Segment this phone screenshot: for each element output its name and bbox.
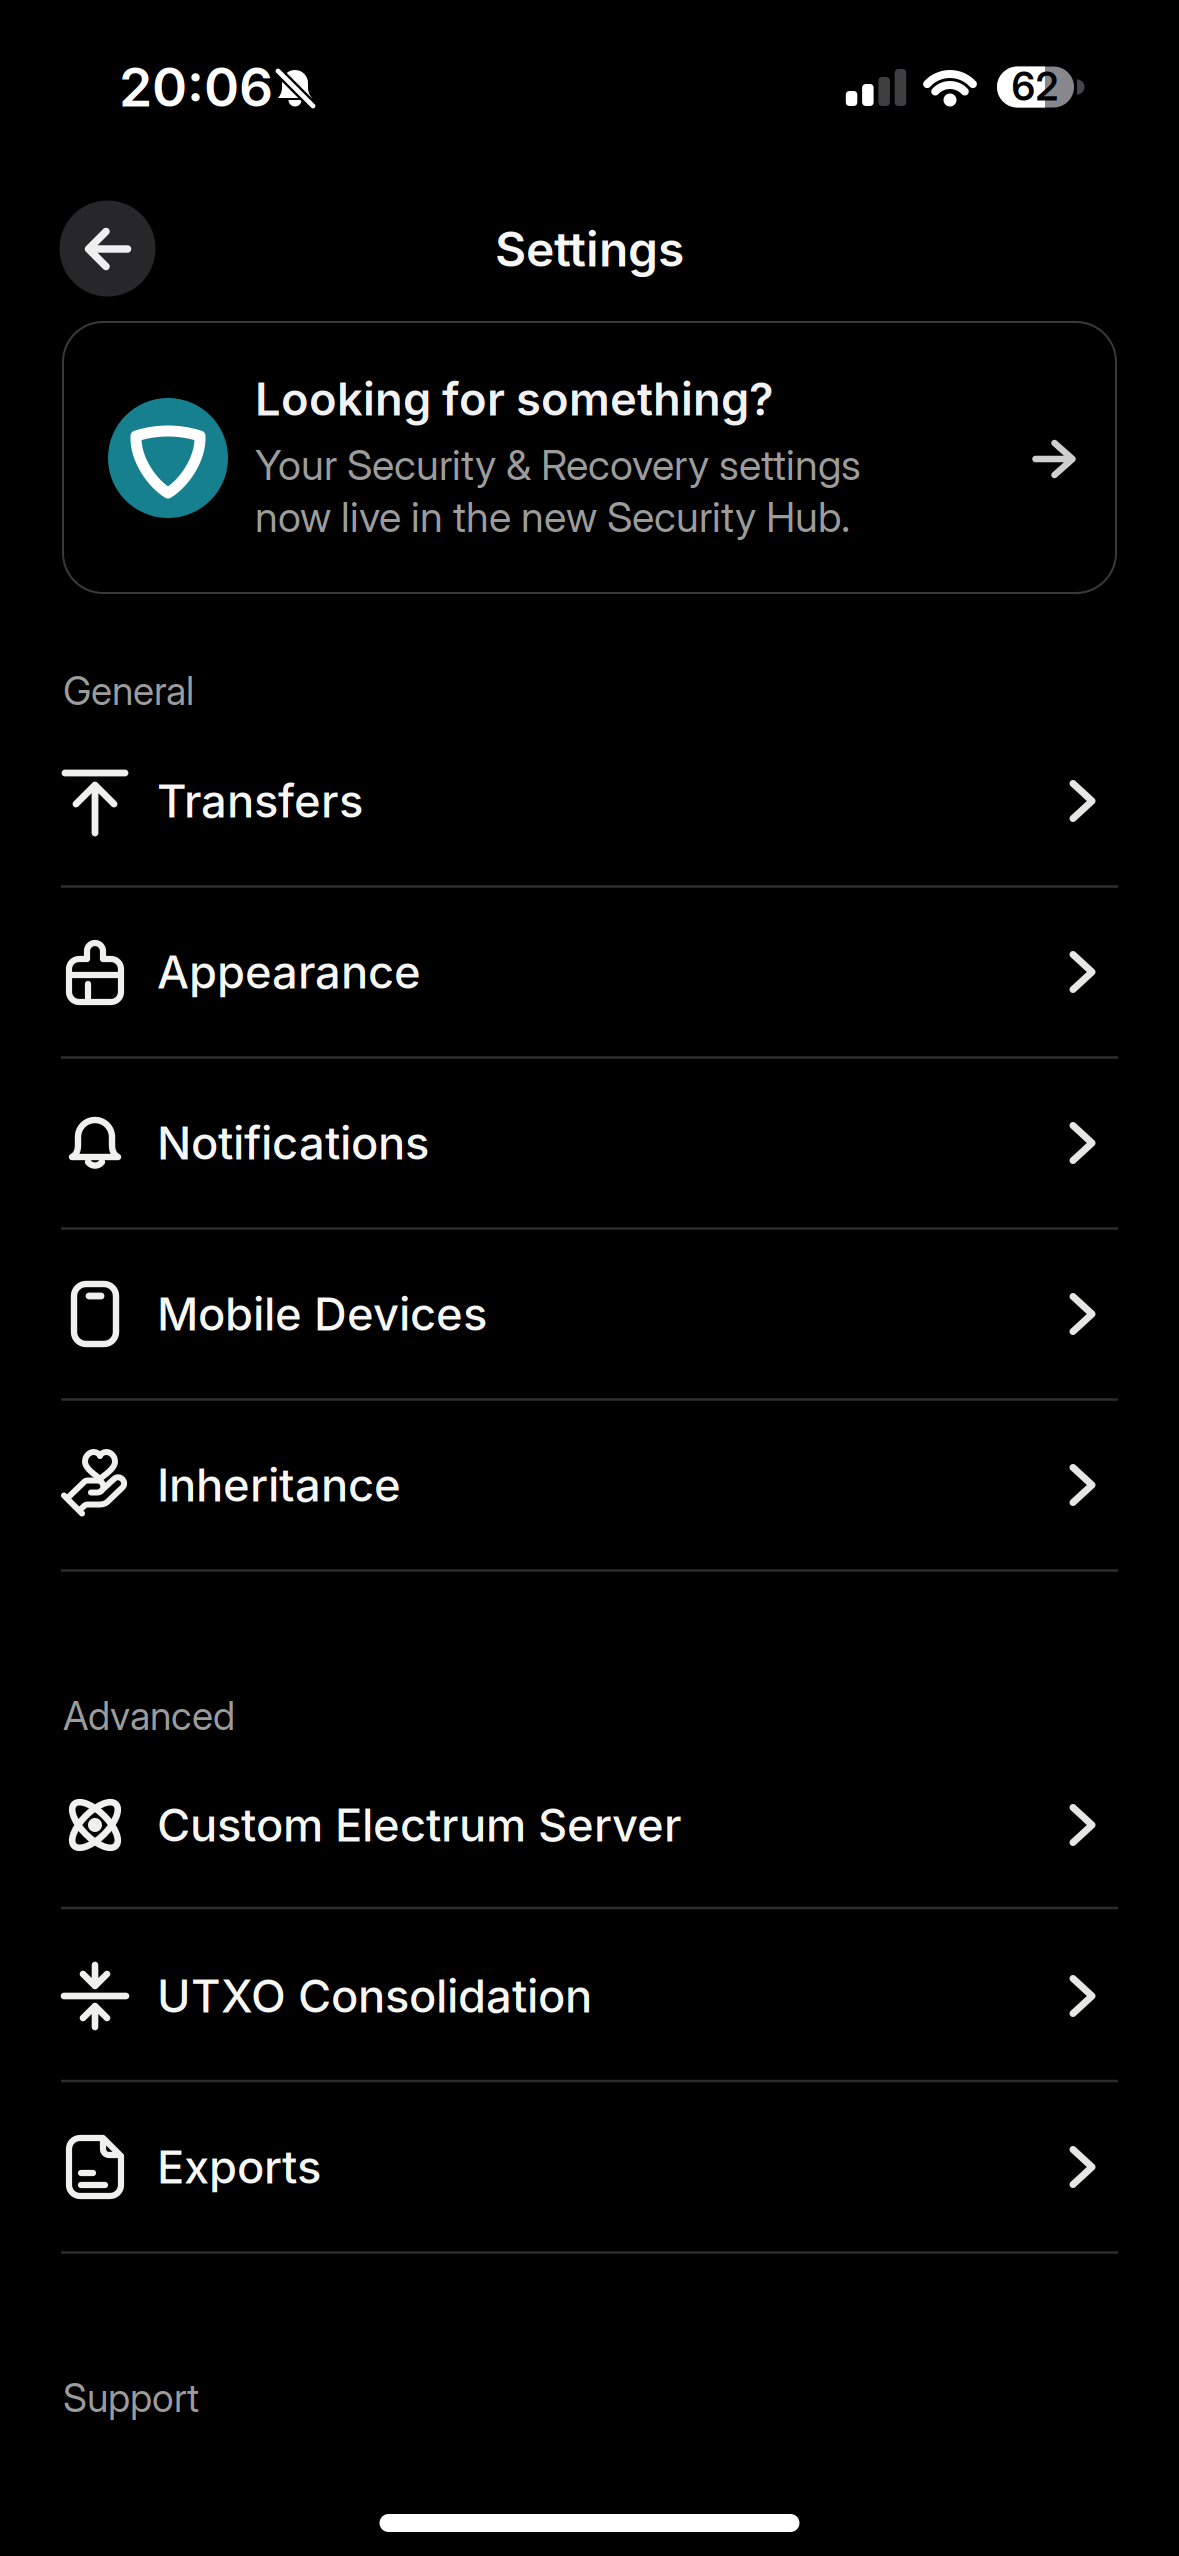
staticText: Mobile Devices — [157, 1287, 487, 1341]
button[interactable]: Transfers — [61, 716, 1118, 886]
staticText: UTXO Consolidation — [157, 1969, 592, 2023]
button[interactable]: Notifications — [61, 1058, 1118, 1228]
staticText: now live in the new Security Hub. — [255, 493, 850, 541]
button[interactable]: UTXO Consolidation — [61, 1911, 1118, 2081]
staticText: Exports — [157, 2140, 321, 2194]
button[interactable]: Back — [59, 200, 155, 296]
staticText: 62 — [1011, 64, 1058, 109]
staticText: Appearance — [157, 945, 421, 999]
button[interactable]: Inheritance — [61, 1400, 1118, 1570]
staticText: Inheritance — [157, 1458, 401, 1512]
staticText: General — [63, 668, 194, 714]
button[interactable]: Appearance — [61, 887, 1118, 1057]
staticText: Your Security & Recovery settings — [255, 441, 861, 489]
staticText: Advanced — [63, 1693, 235, 1739]
staticText: Notifications — [157, 1116, 429, 1170]
button[interactable]: Exports — [61, 2082, 1118, 2252]
staticText: Settings — [495, 221, 684, 277]
staticText: Looking for something? — [255, 372, 774, 426]
button[interactable]: Looking for something? — [63, 322, 1116, 593]
staticText: Transfers — [157, 774, 363, 828]
staticText: 20:06 — [119, 55, 273, 118]
staticText: Support — [63, 2375, 199, 2421]
button[interactable]: Mobile Devices — [61, 1229, 1118, 1399]
button[interactable]: Custom Electrum Server — [61, 1740, 1118, 1910]
staticText: Custom Electrum Server — [157, 1798, 682, 1852]
